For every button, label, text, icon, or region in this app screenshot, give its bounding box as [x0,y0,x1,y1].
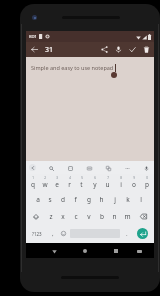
staticText: c [74,212,78,221]
staticText: f [74,195,77,204]
staticText: y [93,180,97,189]
staticText: r [68,180,71,189]
button[interactable]: n [108,208,121,225]
button[interactable]: 4 [63,174,75,191]
button[interactable]: Enter [137,228,148,239]
button[interactable]: Switch keyboard [133,245,145,257]
staticText: n [112,212,117,221]
button[interactable]: Home [79,245,91,257]
button[interactable]: Back [28,43,41,56]
button[interactable]: , [47,225,58,242]
staticText: KO1 [29,34,37,39]
button[interactable]: Back [48,245,60,257]
staticText: 2 [44,176,46,180]
staticText: u [105,180,110,189]
button[interactable]: Stickers [65,163,75,173]
button[interactable]: 3 [51,174,63,191]
button[interactable]: j [108,191,121,208]
button[interactable]: Expand toolbar [29,164,36,171]
staticText: 31 [45,45,54,55]
button[interactable]: h [95,191,108,208]
staticText: g [87,195,91,204]
button[interactable]: g [82,191,95,208]
staticText: p [145,180,149,189]
staticText: v [87,212,91,221]
button[interactable]: Voice [141,163,151,173]
button[interactable]: 7 [101,174,114,191]
button[interactable]: l [134,191,147,208]
button[interactable]: More [122,163,132,173]
button[interactable]: Search [46,163,56,173]
staticText: 3 [56,176,58,180]
staticText: a [36,195,40,204]
button[interactable]: x [57,208,69,225]
button[interactable]: . [121,225,132,242]
staticText: x [61,212,65,221]
button[interactable]: Share [97,42,111,57]
staticText: ?123 [32,231,42,237]
button[interactable]: Save [125,42,139,57]
staticText: l [140,195,142,204]
staticText: s [48,195,52,204]
button[interactable]: GIF [84,163,94,173]
staticText: h [99,195,104,204]
button[interactable]: 1 [27,174,39,191]
staticText: 9 [133,176,135,180]
button[interactable]: k [121,191,134,208]
button[interactable]: Recents [110,245,122,257]
staticText: d [61,195,65,204]
button[interactable]: f [69,191,82,208]
button[interactable]: 0 [140,174,153,191]
button[interactable]: m [121,208,134,225]
staticText: 7 [107,176,109,180]
button[interactable]: 9 [127,174,140,191]
staticText: 8 [120,176,122,180]
button[interactable]: 6 [88,174,101,191]
button[interactable]: Shift [27,208,45,225]
button[interactable]: Delete [139,42,153,57]
staticText: 4 [69,176,71,180]
button[interactable]: b [95,208,108,225]
staticText: m [124,212,131,221]
staticText: i [120,180,122,189]
button[interactable]: d [56,191,69,208]
staticText: 0 [146,176,148,180]
button[interactable]: 2 [39,174,51,191]
staticText: w [42,180,48,189]
staticText: . [126,230,128,238]
staticText: b [100,212,104,221]
button[interactable]: s [44,191,56,208]
staticText: e [55,180,59,189]
button[interactable]: Emoji [58,225,69,242]
staticText: o [132,180,136,189]
staticText: j [114,195,116,204]
staticText: q [31,180,35,189]
staticText: 1 [32,176,34,180]
staticText: z [49,212,53,221]
staticText: k [126,195,130,204]
staticText: Simple and easy to use notepad [31,64,114,71]
button[interactable]: ?123 [27,225,47,242]
staticText: , [52,230,54,238]
staticText: 6 [94,176,96,180]
button[interactable]: v [82,208,95,225]
button[interactable]: 8 [114,174,127,191]
button[interactable]: Translate [103,163,113,173]
button[interactable]: Voice input [111,42,125,57]
button[interactable]: Backspace [134,208,153,225]
button[interactable]: a [32,191,44,208]
staticText: 5 [81,176,83,180]
staticText: t [80,180,83,189]
button[interactable]: c [69,208,82,225]
button[interactable]: z [45,208,57,225]
button[interactable]: 5 [75,174,88,191]
